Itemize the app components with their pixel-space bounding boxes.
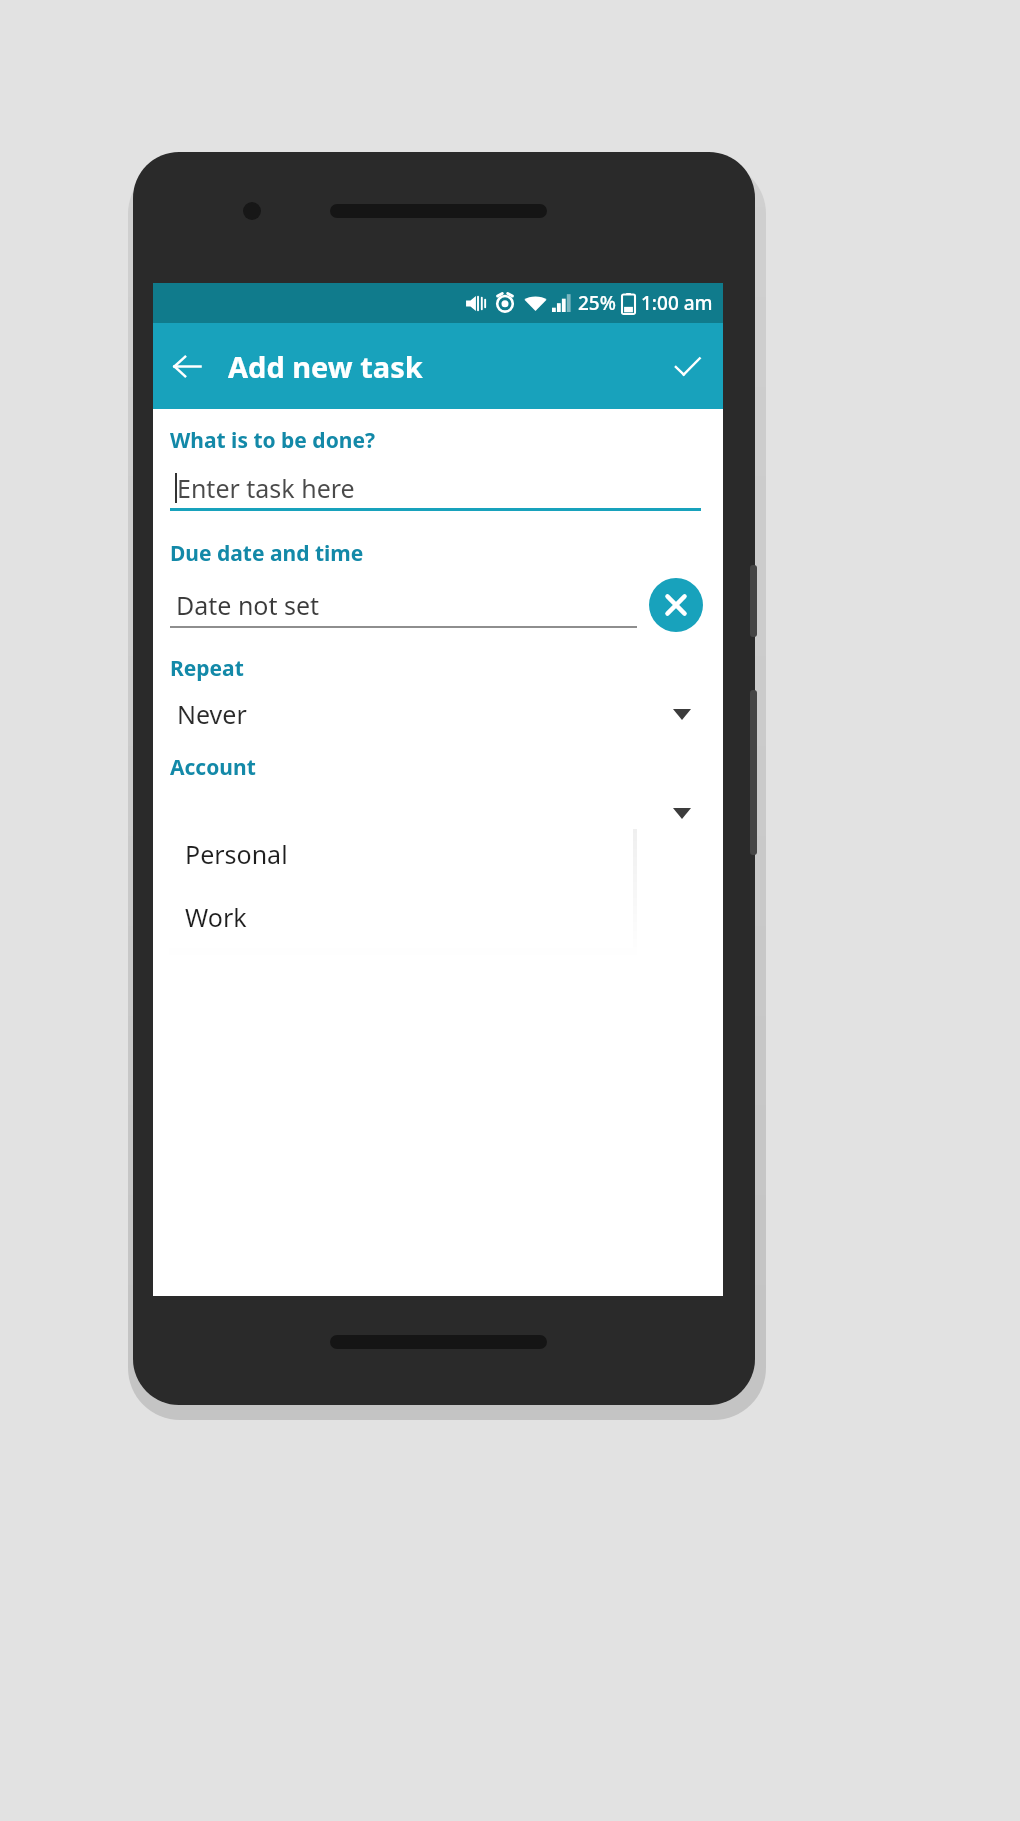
staticText: Add new task <box>228 347 423 386</box>
button[interactable]: Clear date <box>649 578 703 632</box>
button[interactable]: Enter task here <box>170 465 701 511</box>
staticText: Personal <box>185 837 288 871</box>
button[interactable]: Work <box>167 885 633 948</box>
staticText: Repeat <box>170 654 244 683</box>
staticText: 1:00 am <box>641 290 713 316</box>
staticText: Never <box>177 697 247 731</box>
button[interactable]: Date not set <box>170 582 637 628</box>
staticText: Work <box>185 900 247 934</box>
staticText: 25% <box>578 290 616 316</box>
staticText: Date not set <box>176 588 320 622</box>
button[interactable]: Personal <box>167 822 633 885</box>
staticText: Account <box>170 753 256 782</box>
staticText: What is to be done? <box>170 426 375 455</box>
button[interactable]: Never <box>153 683 723 745</box>
button[interactable]: Back <box>159 338 215 394</box>
button[interactable]: Save task <box>659 338 715 394</box>
staticText: Enter task here <box>177 471 355 505</box>
staticText: Due date and time <box>170 539 364 568</box>
button[interactable] <box>153 782 723 844</box>
